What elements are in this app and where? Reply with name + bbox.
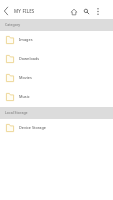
button[interactable]: Search	[79, 4, 93, 19]
staticText: Movies	[19, 75, 32, 80]
button[interactable]: Downloads	[0, 50, 113, 69]
button[interactable]: Home	[66, 4, 81, 19]
staticText: Downloads	[19, 56, 40, 61]
button[interactable]: Music	[0, 88, 113, 107]
button[interactable]: More options	[92, 4, 104, 19]
staticText: Category	[5, 22, 21, 27]
staticText: Local Storage	[5, 110, 28, 115]
staticText: Music	[19, 94, 30, 99]
staticText: Images	[19, 37, 33, 42]
button[interactable]: Back	[0, 3, 11, 19]
staticText: Device Storage	[19, 125, 47, 130]
button[interactable]: Movies	[0, 69, 113, 88]
staticText: MY FILES	[14, 8, 35, 14]
button[interactable]: Images	[0, 31, 113, 50]
button[interactable]: Device Storage	[0, 119, 113, 138]
